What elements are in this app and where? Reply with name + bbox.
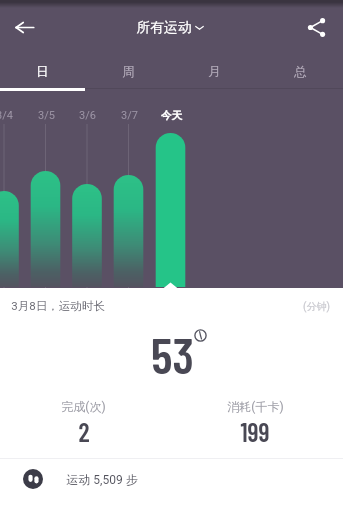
staticText: 运动 5,509 步 — [66, 472, 138, 487]
staticText: 月 — [208, 64, 221, 80]
button[interactable]: 周 — [85, 54, 171, 90]
staticText: 周 — [122, 64, 135, 80]
button[interactable]: 总 — [257, 54, 343, 90]
staticText: 消耗(千卡) — [227, 399, 284, 414]
button[interactable]: 日 — [0, 54, 85, 90]
staticText: 日 — [36, 64, 49, 80]
staticText: 3月8日，运动时长 — [11, 299, 105, 313]
staticText: 所有运动 — [136, 19, 192, 36]
staticText: 3/5 — [38, 109, 55, 122]
staticText: 3/6 — [79, 109, 96, 122]
staticText: 199 — [240, 416, 270, 447]
staticText: 3/7 — [121, 109, 138, 122]
button[interactable]: Back — [6, 9, 42, 45]
button[interactable]: Share — [298, 9, 334, 45]
button[interactable]: 完成(次) — [0, 399, 169, 447]
staticText: (分钟) — [303, 300, 330, 313]
button[interactable]: 所有运动 — [136, 19, 204, 36]
staticText: 完成(次) — [61, 399, 106, 414]
staticText: 3/4 — [0, 109, 13, 122]
staticText: 总 — [294, 64, 307, 80]
button[interactable]: 运动 5,509 步 — [0, 455, 343, 503]
staticText: 2 — [78, 416, 90, 447]
staticText: 53 — [151, 324, 194, 384]
button[interactable]: 月 — [171, 54, 257, 90]
staticText: 今天 — [161, 109, 182, 122]
button[interactable]: 消耗(千卡) — [169, 399, 341, 447]
